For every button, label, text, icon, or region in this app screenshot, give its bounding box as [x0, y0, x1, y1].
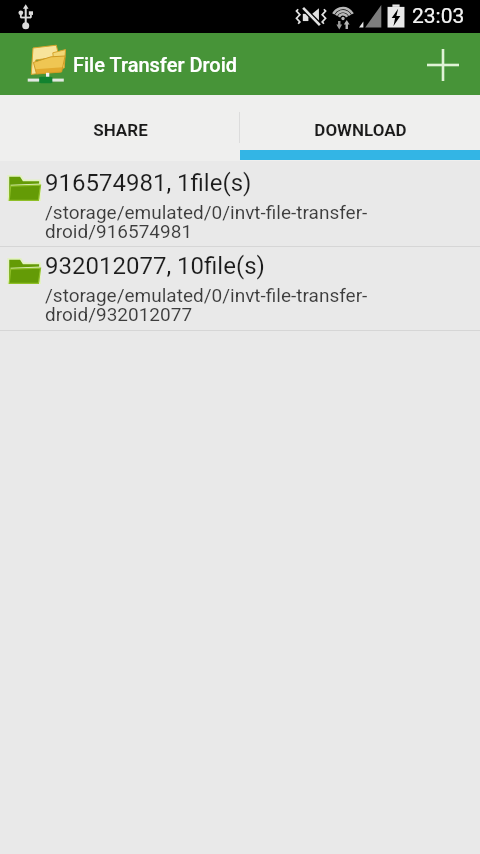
- staticText: 932012077, 10file(s): [45, 252, 265, 280]
- staticText: DOWNLOAD: [314, 120, 407, 140]
- button[interactable]: 932012077, 10file(s): [0, 247, 480, 330]
- button[interactable]: 916574981, 1file(s): [0, 161, 480, 246]
- staticText: droid/916574981: [45, 220, 193, 242]
- staticText: /storage/emulated/0/invt-file-transfer-: [45, 201, 368, 223]
- staticText: 23:03: [412, 4, 465, 29]
- button[interactable]: DOWNLOAD: [240, 95, 480, 152]
- staticText: SHARE: [93, 120, 148, 140]
- staticText: 916574981, 1file(s): [45, 169, 252, 197]
- staticText: droid/932012077: [45, 303, 193, 325]
- button[interactable]: Add: [412, 33, 474, 95]
- staticText: File Transfer Droid: [73, 53, 238, 76]
- button[interactable]: SHARE: [0, 95, 240, 152]
- staticText: /storage/emulated/0/invt-file-transfer-: [45, 284, 368, 306]
